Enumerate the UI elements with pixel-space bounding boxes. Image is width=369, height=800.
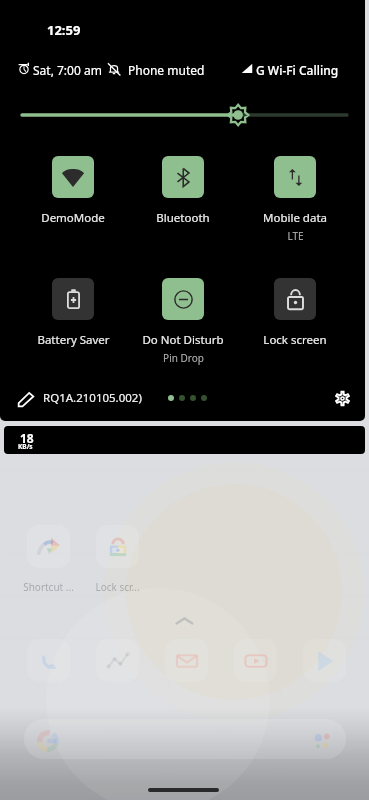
staticText: Pin Drop (163, 351, 204, 365)
button[interactable]: Lock screen (240, 278, 350, 348)
staticText: Sat, 7:00 am (33, 62, 102, 78)
staticText: G Wi-Fi Calling (256, 62, 339, 78)
button[interactable]: Lock scr... (83, 525, 152, 594)
staticText: Phone muted (128, 62, 205, 78)
staticText: Mobile data (263, 210, 327, 226)
button[interactable]: Play Store (303, 639, 346, 682)
button[interactable]: Shortcut ... (14, 525, 83, 594)
button[interactable]: Edit tiles (12, 385, 40, 413)
staticText: Lock screen (263, 332, 327, 348)
button[interactable]: Mobile data (240, 156, 350, 243)
staticText: 12:59 (47, 21, 81, 39)
button[interactable]: YouTube (234, 639, 277, 682)
staticText: KB/s (18, 442, 33, 451)
staticText: Bluetooth (156, 210, 210, 226)
staticText: DemoMode (41, 210, 105, 226)
button[interactable]: Phone (27, 639, 70, 682)
button[interactable]: Gmail (165, 639, 208, 682)
staticText: Do Not Disturb (142, 332, 224, 348)
button[interactable]: Do Not Disturb (128, 278, 238, 365)
button[interactable]: Brightness (0, 104, 365, 126)
button[interactable]: Settings (328, 384, 356, 412)
staticText: RQ1A.210105.002) (43, 390, 142, 406)
button[interactable]: DemoMode (18, 156, 128, 226)
button[interactable]: 18 (4, 426, 365, 454)
staticText: LTE (287, 229, 304, 243)
button[interactable]: Search (24, 719, 346, 759)
staticText: Lock scr... (95, 580, 140, 594)
button[interactable]: Analytics (96, 639, 139, 682)
button[interactable]: Bluetooth (128, 156, 238, 226)
button[interactable]: Battery Saver (18, 278, 128, 348)
staticText: 18 (20, 430, 34, 446)
staticText: Shortcut ... (23, 580, 74, 594)
staticText: Battery Saver (37, 332, 110, 348)
